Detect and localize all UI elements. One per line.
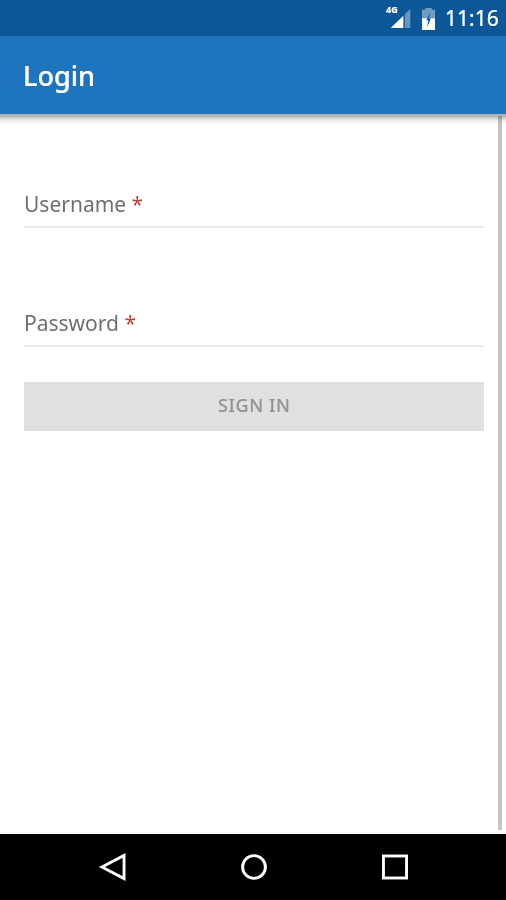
button[interactable]: Back: [86, 840, 139, 893]
button[interactable]: Username *: [24, 182, 484, 230]
button[interactable]: Password *: [24, 301, 484, 349]
staticText: Login: [23, 57, 95, 94]
staticText: 4G: [386, 3, 398, 15]
button[interactable]: SIGN IN: [24, 382, 484, 431]
button[interactable]: Recent apps: [368, 840, 421, 893]
staticText: 11:16: [445, 4, 499, 33]
staticText: Username *: [24, 190, 144, 219]
button[interactable]: Home: [227, 840, 280, 893]
staticText: SIGN IN: [218, 393, 291, 418]
staticText: Password *: [24, 309, 137, 338]
